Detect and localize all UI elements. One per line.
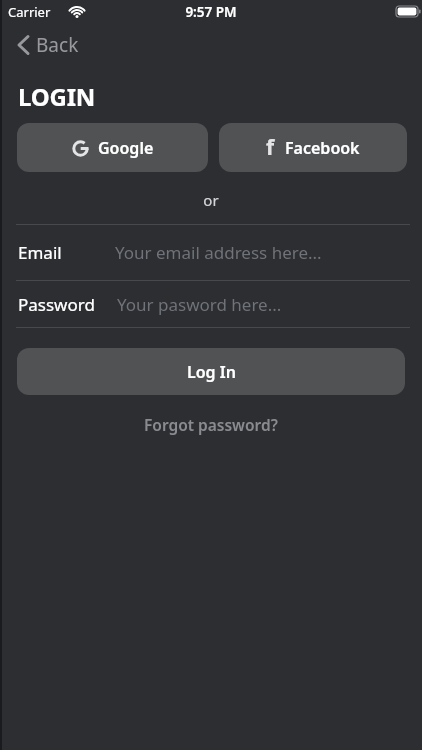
staticText: LOGIN [18,80,96,113]
staticText: Your pasword here... [117,293,282,316]
staticText: Forgot password? [144,414,278,435]
staticText: Carrier [8,3,51,21]
button[interactable]: Log In [17,348,405,395]
staticText: or [0,190,422,210]
staticText: f [266,133,275,162]
staticText: Facebook [285,137,360,159]
button[interactable]: Email [0,225,422,280]
staticText: Email [18,241,62,264]
button[interactable]: Back [10,28,86,62]
button[interactable]: f [219,123,407,172]
button[interactable]: Google [17,123,208,172]
staticText: Password [18,293,95,316]
staticText: Google [98,137,154,159]
button[interactable]: Forgot password? [138,408,284,441]
staticText: Back [36,32,79,58]
staticText: Your email address here... [115,241,322,264]
button[interactable]: Password [0,281,422,327]
staticText: Log In [187,361,236,383]
staticText: 9:57 PM [0,3,422,21]
